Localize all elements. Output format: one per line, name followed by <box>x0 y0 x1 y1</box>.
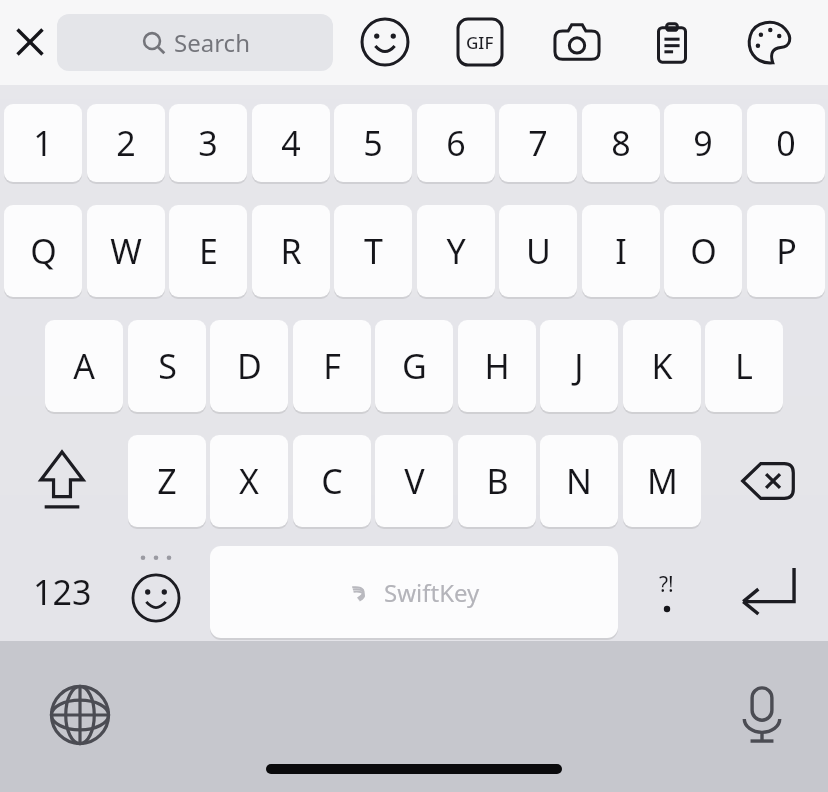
button[interactable]: SwiftKey <box>210 546 618 638</box>
button[interactable]: 2 <box>87 104 165 182</box>
button[interactable]: L <box>705 320 783 412</box>
staticText: M <box>647 458 678 504</box>
staticText: D <box>237 343 262 389</box>
staticText: X <box>239 458 259 504</box>
button[interactable]: H <box>458 320 536 412</box>
button[interactable]: 1 <box>4 104 82 182</box>
button[interactable]: J <box>540 320 618 412</box>
button[interactable]: D <box>210 320 288 412</box>
staticText: K <box>651 343 673 389</box>
button[interactable]: Emoji keyboard <box>120 550 192 634</box>
staticText: Z <box>157 458 177 504</box>
button[interactable]: Switch language <box>38 673 122 757</box>
button[interactable]: B <box>458 435 536 527</box>
staticText: W <box>110 228 142 274</box>
button[interactable]: F <box>293 320 371 412</box>
staticText: 4 <box>281 120 301 166</box>
staticText: R <box>280 228 302 274</box>
button[interactable]: T <box>334 205 412 297</box>
button[interactable]: Q <box>4 205 82 297</box>
staticText: SwiftKey <box>384 576 480 609</box>
button[interactable]: I <box>582 205 660 297</box>
button[interactable]: 9 <box>664 104 742 182</box>
staticText: GIF <box>466 31 494 54</box>
button[interactable]: 3 <box>169 104 247 182</box>
staticText: 6 <box>446 120 466 166</box>
button[interactable]: R <box>252 205 330 297</box>
button[interactable]: Voice input <box>720 673 804 757</box>
staticText: 8 <box>611 120 631 166</box>
button[interactable]: 4 <box>252 104 330 182</box>
button[interactable]: Y <box>417 205 495 297</box>
staticText: Search <box>174 26 250 59</box>
staticText: Q <box>30 228 57 274</box>
staticText: O <box>690 228 717 274</box>
button[interactable]: 7 <box>499 104 577 182</box>
staticText: S <box>158 343 177 389</box>
staticText: L <box>735 343 753 389</box>
button[interactable]: X <box>210 435 288 527</box>
button[interactable]: 6 <box>417 104 495 182</box>
button[interactable]: Close keyboard <box>4 13 56 71</box>
button[interactable]: 5 <box>334 104 412 182</box>
staticText: U <box>526 228 551 274</box>
staticText: 1 <box>33 120 53 166</box>
staticText: 0 <box>776 120 796 166</box>
button[interactable]: V <box>375 435 453 527</box>
staticText: 3 <box>198 120 218 166</box>
button[interactable]: Enter <box>718 554 818 630</box>
button[interactable]: E <box>169 205 247 297</box>
staticText: J <box>574 343 584 389</box>
staticText: P <box>776 228 797 274</box>
staticText: V <box>404 458 425 504</box>
button[interactable]: 8 <box>582 104 660 182</box>
button[interactable]: Themes <box>740 14 798 70</box>
button[interactable]: Backspace <box>722 451 814 511</box>
button[interactable]: Search <box>57 14 333 71</box>
button[interactable]: GIF <box>458 19 502 65</box>
button[interactable]: U <box>499 205 577 297</box>
staticText: C <box>321 458 343 504</box>
button[interactable]: W <box>87 205 165 297</box>
button[interactable]: G <box>375 320 453 412</box>
staticText: 5 <box>363 120 383 166</box>
button[interactable]: Shift <box>18 445 106 517</box>
staticText: 2 <box>116 120 136 166</box>
staticText: B <box>486 458 509 504</box>
staticText: H <box>484 343 510 389</box>
staticText: 9 <box>693 120 713 166</box>
button[interactable]: 123 <box>10 546 114 638</box>
button[interactable]: K <box>623 320 701 412</box>
button[interactable]: O <box>664 205 742 297</box>
staticText: T <box>364 228 383 274</box>
button[interactable]: A <box>45 320 123 412</box>
staticText: I <box>615 228 627 274</box>
staticText: ?! <box>659 570 674 599</box>
button[interactable]: Emoji <box>357 14 413 70</box>
button[interactable]: Camera <box>548 14 606 70</box>
button[interactable]: Clipboard <box>645 13 699 71</box>
button[interactable]: N <box>540 435 618 527</box>
staticText: E <box>199 228 218 274</box>
button[interactable]: C <box>293 435 371 527</box>
button[interactable]: S <box>128 320 206 412</box>
staticText: Y <box>446 228 466 274</box>
staticText: N <box>566 458 592 504</box>
button[interactable]: 0 <box>747 104 825 182</box>
button[interactable]: Z <box>128 435 206 527</box>
staticText: F <box>323 343 341 389</box>
staticText: 7 <box>528 120 548 166</box>
button[interactable]: M <box>623 435 701 527</box>
staticText: G <box>402 343 427 389</box>
staticText: 123 <box>33 569 92 615</box>
button[interactable]: ?! <box>628 546 704 638</box>
staticText: A <box>73 343 95 389</box>
button[interactable]: P <box>747 205 825 297</box>
